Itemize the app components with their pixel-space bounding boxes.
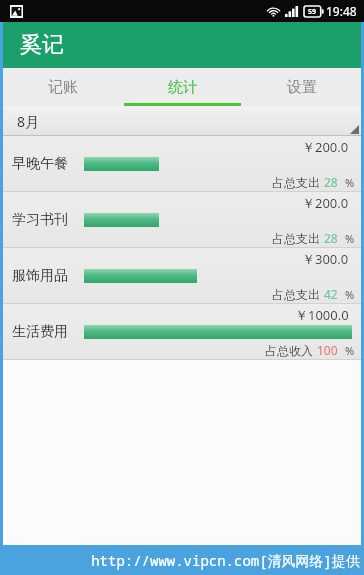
button[interactable]: 8月 bbox=[3, 106, 361, 136]
staticText: % bbox=[345, 287, 355, 302]
button[interactable]: ￥200.0 bbox=[3, 136, 361, 191]
staticText: % bbox=[345, 175, 355, 190]
staticText: 占总收入 bbox=[265, 343, 313, 358]
button[interactable]: ￥200.0 bbox=[3, 192, 361, 247]
staticText: 占总支出 bbox=[272, 175, 320, 190]
staticText: ￥1000.0 bbox=[295, 306, 349, 324]
staticText: 28 bbox=[324, 174, 338, 190]
staticText: 8月 bbox=[17, 112, 40, 131]
staticText: 学习书刊 bbox=[12, 211, 68, 229]
staticText: 早晚午餐 bbox=[12, 155, 68, 173]
staticText: 42 bbox=[324, 286, 338, 302]
staticText: 100 bbox=[317, 342, 338, 358]
other: Signal bbox=[285, 6, 299, 17]
staticText: ￥200.0 bbox=[302, 138, 349, 156]
button[interactable]: 统计 bbox=[123, 68, 242, 106]
staticText: 占总支出 bbox=[272, 287, 320, 302]
staticText: % bbox=[345, 231, 355, 246]
button[interactable]: ￥1000.0 bbox=[3, 304, 361, 359]
staticText: 服饰用品 bbox=[12, 267, 68, 285]
staticText: % bbox=[345, 343, 355, 358]
staticText: 奚记 bbox=[20, 31, 64, 59]
staticText: ￥200.0 bbox=[302, 194, 349, 212]
staticText: 28 bbox=[324, 230, 338, 246]
button[interactable]: 记账 bbox=[3, 68, 123, 106]
staticText: http://www.vipcn.com[清风网络]提供 bbox=[91, 551, 360, 570]
staticText: 占总支出 bbox=[272, 231, 320, 246]
staticText: 生活费用 bbox=[12, 323, 68, 341]
button[interactable]: 设置 bbox=[242, 68, 361, 106]
staticText: 统计 bbox=[168, 78, 198, 97]
button[interactable]: ￥300.0 bbox=[3, 248, 361, 303]
staticText: 59 bbox=[308, 7, 317, 17]
other: Battery 59 percent bbox=[304, 6, 323, 17]
staticText: 记账 bbox=[48, 78, 78, 97]
staticText: 19:48 bbox=[326, 3, 357, 19]
other: Wi-Fi bbox=[267, 6, 280, 17]
staticText: ￥300.0 bbox=[302, 250, 349, 268]
staticText: 设置 bbox=[287, 78, 317, 97]
